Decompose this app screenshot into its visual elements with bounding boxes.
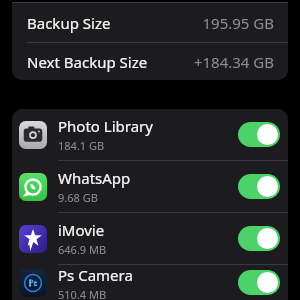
- staticText: 195.95 GB: [202, 13, 274, 33]
- staticText: Backup Size: [27, 13, 111, 33]
- button[interactable]: Toggle backup: [238, 174, 280, 199]
- staticText: 510.4 MB: [58, 287, 107, 300]
- button[interactable]: Next Backup Size: [12, 43, 288, 80]
- button[interactable]: iMovie: [12, 213, 288, 264]
- button[interactable]: Toggle backup: [238, 122, 280, 147]
- staticText: +184.34 GB: [193, 52, 274, 72]
- button[interactable]: Photo Library: [12, 109, 288, 160]
- button[interactable]: WhatsApp: [12, 161, 288, 212]
- staticText: Photo Library: [58, 116, 153, 136]
- staticText: Next Backup Size: [27, 52, 148, 72]
- staticText: Ps Camera: [58, 265, 133, 285]
- button[interactable]: Backup Size: [12, 3, 288, 42]
- staticText: 184.1 GB: [58, 138, 105, 153]
- staticText: 9.68 GB: [58, 190, 98, 205]
- button[interactable]: Toggle backup: [238, 270, 280, 295]
- staticText: WhatsApp: [58, 168, 131, 188]
- staticText: 646.9 MB: [58, 242, 107, 257]
- button[interactable]: Toggle backup: [238, 226, 280, 251]
- staticText: iMovie: [58, 220, 105, 240]
- button[interactable]: Ps Camera: [12, 265, 288, 300]
